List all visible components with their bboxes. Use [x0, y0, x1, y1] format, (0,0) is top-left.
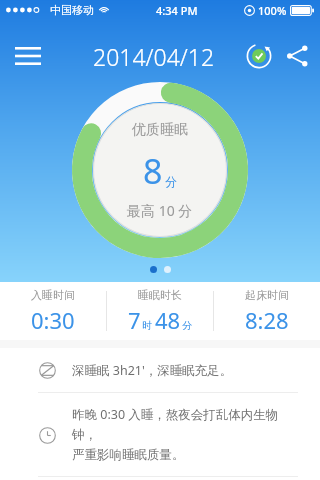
staticText: 优质睡眠 [132, 121, 188, 139]
staticText: 分 [165, 174, 177, 189]
button[interactable]: 昨晚 0:30 入睡，熬夜会打乱体内生物钟， 严重影响睡眠质量。 [0, 393, 320, 476]
staticText: 分 [182, 319, 192, 332]
staticText: 100% [258, 3, 287, 18]
staticText: 8:28 [245, 305, 289, 335]
staticText: 昨晚 0:30 入睡，熬夜会打乱体内生物钟， 严重影响睡眠质量。 [72, 406, 300, 463]
button[interactable]: 深睡眠 3h21'，深睡眠充足。 [0, 348, 320, 392]
staticText: 起床时间 [245, 288, 289, 302]
button[interactable]: Share [280, 39, 314, 73]
staticText: 深睡眠 3h21'，深睡眠充足。 [72, 362, 233, 379]
staticText: 最高 10 分 [127, 201, 193, 220]
staticText: 入睡时间 [31, 288, 75, 302]
button[interactable]: 起床时间 [214, 282, 320, 340]
staticText: 8 [143, 148, 163, 194]
staticText: 睡眠时长 [138, 288, 182, 302]
button[interactable]: 入睡时间 [0, 282, 106, 340]
button[interactable]: Sync [242, 39, 276, 73]
staticText: 7 [128, 305, 141, 335]
staticText: 0:30 [31, 305, 75, 335]
button[interactable]: Menu [6, 34, 50, 78]
staticText: 48 [155, 305, 181, 335]
staticText: 4:34 PM [156, 3, 198, 18]
staticText: 2014/04/12 [93, 41, 215, 72]
staticText: 中国移动 [50, 3, 94, 17]
staticText: 时 [142, 319, 152, 332]
button[interactable]: 睡眠时长 [107, 282, 213, 340]
